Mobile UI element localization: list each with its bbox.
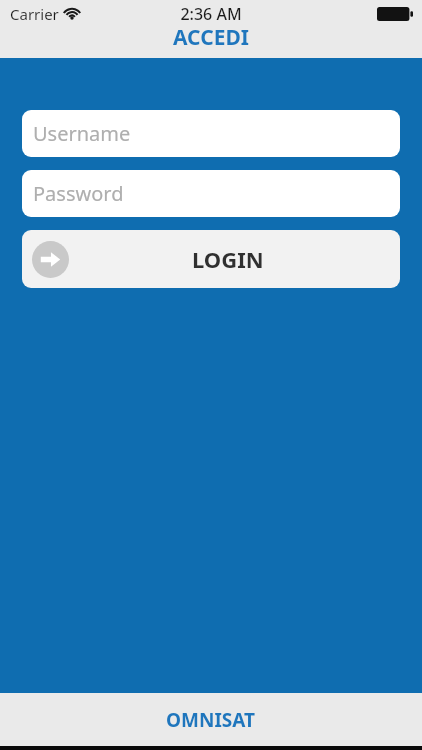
staticText: 2:36 AM: [0, 3, 422, 25]
button[interactable]: Password: [22, 170, 400, 217]
staticText: Username: [33, 120, 131, 147]
staticText: ACCEDI: [173, 23, 249, 52]
staticText: Password: [33, 180, 124, 207]
button[interactable]: Username: [22, 110, 400, 157]
staticText: LOGIN: [192, 244, 264, 274]
button[interactable]: LOGIN: [22, 230, 400, 288]
staticText: Carrier: [10, 4, 59, 24]
staticText: OMNISAT: [166, 707, 256, 733]
